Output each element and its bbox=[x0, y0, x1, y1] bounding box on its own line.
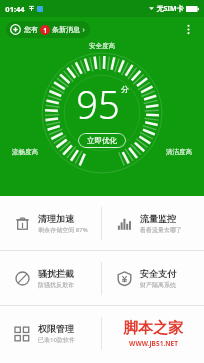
button[interactable]: 安全支付 bbox=[102, 251, 204, 305]
button[interactable]: 您有 bbox=[6, 21, 90, 38]
staticText: 清洁度高 bbox=[166, 148, 192, 156]
staticText: 95 bbox=[76, 78, 120, 130]
staticText: 骚扰拦截 bbox=[38, 268, 74, 279]
staticText: 01:44 bbox=[5, 4, 25, 14]
staticText: 立即优化 bbox=[87, 136, 117, 145]
staticText: 防骚扰反欺诈 bbox=[38, 281, 74, 289]
button[interactable]: 流量监控 bbox=[102, 196, 204, 250]
staticText: 权限管理 bbox=[38, 323, 74, 334]
staticText: 财产隔离系统 bbox=[140, 281, 176, 289]
staticText: 清理加速 bbox=[38, 213, 74, 224]
staticText: 安全支付 bbox=[140, 268, 176, 279]
button[interactable]: 权限管理 bbox=[0, 306, 101, 360]
button[interactable]: 立即优化 bbox=[78, 133, 126, 148]
button[interactable]: More options bbox=[180, 21, 197, 38]
staticText: 安全度高 bbox=[89, 42, 115, 50]
staticText: 已装10款软件 bbox=[38, 336, 75, 344]
staticText: WWW.JB51.NET bbox=[129, 339, 178, 348]
staticText: 流畅度高 bbox=[12, 148, 38, 156]
staticText: 分 bbox=[121, 84, 129, 94]
staticText: › bbox=[82, 25, 85, 35]
staticText: 1 bbox=[43, 26, 47, 35]
staticText: 流量监控 bbox=[140, 213, 176, 224]
staticText: 无SIM卡 bbox=[156, 4, 184, 14]
staticText: 条新消息 bbox=[52, 25, 80, 34]
button[interactable]: 骚扰拦截 bbox=[0, 251, 101, 305]
staticText: 脚本之家 bbox=[123, 319, 183, 338]
button[interactable]: 清理加速 bbox=[0, 196, 101, 250]
staticText: 您有 bbox=[24, 25, 38, 34]
staticText: 看看流量去哪了 bbox=[140, 226, 182, 234]
staticText: 剩余存储空间 87% bbox=[38, 226, 88, 234]
